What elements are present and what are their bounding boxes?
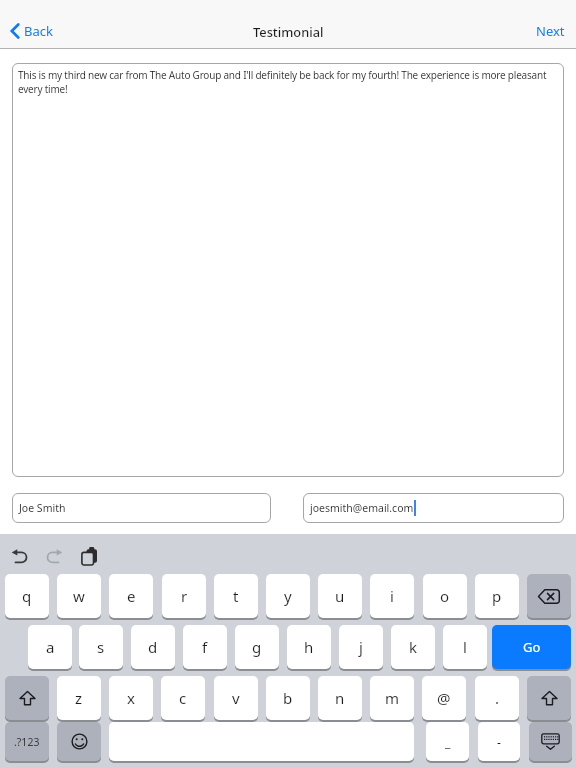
staticText: @ bbox=[437, 688, 451, 708]
staticText: y bbox=[284, 586, 292, 606]
staticText: p bbox=[492, 586, 502, 606]
button[interactable]: f bbox=[183, 625, 227, 669]
button[interactable]: . bbox=[475, 676, 519, 720]
staticText: f bbox=[202, 637, 208, 657]
button[interactable]: k bbox=[391, 625, 435, 669]
staticText: m bbox=[385, 688, 400, 708]
button[interactable]: u bbox=[318, 574, 362, 618]
button[interactable]: n bbox=[318, 676, 362, 720]
staticText: r bbox=[181, 586, 188, 606]
staticText: Next bbox=[536, 22, 565, 40]
button[interactable]: c bbox=[161, 676, 205, 720]
button[interactable]: t bbox=[214, 574, 258, 618]
staticText: k bbox=[409, 637, 418, 657]
button[interactable]: Joe Smith bbox=[12, 493, 271, 523]
button[interactable]: - bbox=[478, 722, 520, 761]
staticText: .?123 bbox=[14, 735, 40, 749]
button[interactable]: o bbox=[423, 574, 467, 618]
staticText: x bbox=[127, 688, 135, 708]
button[interactable]: x bbox=[109, 676, 153, 720]
staticText: l bbox=[463, 637, 467, 657]
button[interactable]: Back bbox=[10, 22, 53, 40]
button[interactable]: p bbox=[475, 574, 519, 618]
staticText: Go bbox=[523, 638, 541, 656]
staticText: s bbox=[97, 637, 105, 657]
button[interactable]: Go bbox=[492, 625, 571, 669]
button[interactable] bbox=[5, 676, 49, 720]
staticText: e bbox=[127, 586, 136, 606]
staticText: n bbox=[335, 688, 345, 708]
button[interactable] bbox=[527, 574, 571, 618]
staticText: o bbox=[440, 586, 450, 606]
button[interactable]: b bbox=[266, 676, 310, 720]
staticText: joesmith@email.com bbox=[310, 501, 414, 515]
button[interactable]: g bbox=[235, 625, 279, 669]
button[interactable] bbox=[11, 549, 28, 564]
button[interactable] bbox=[46, 549, 63, 564]
staticText: c bbox=[179, 688, 187, 708]
staticText: Testimonial bbox=[253, 23, 324, 40]
button[interactable]: joesmith@email.com bbox=[303, 493, 564, 523]
button[interactable]: a bbox=[28, 625, 72, 669]
staticText: _ bbox=[445, 734, 451, 750]
staticText: . bbox=[495, 688, 500, 708]
button[interactable]: .?123 bbox=[5, 722, 49, 761]
staticText: i bbox=[390, 586, 394, 606]
button[interactable] bbox=[527, 676, 571, 720]
staticText: d bbox=[148, 637, 158, 657]
staticText: b bbox=[283, 688, 293, 708]
button[interactable]: d bbox=[131, 625, 175, 669]
button[interactable] bbox=[81, 547, 98, 566]
button[interactable]: i bbox=[370, 574, 414, 618]
button[interactable]: @ bbox=[422, 676, 466, 720]
staticText: Back bbox=[24, 22, 53, 40]
staticText: z bbox=[75, 688, 83, 708]
staticText: a bbox=[46, 637, 55, 657]
staticText: h bbox=[304, 637, 314, 657]
button[interactable]: l bbox=[443, 625, 487, 669]
staticText: This is my third new car from The Auto G… bbox=[18, 68, 547, 96]
button[interactable]: z bbox=[57, 676, 101, 720]
staticText: v bbox=[232, 688, 240, 708]
staticText: q bbox=[22, 586, 32, 606]
staticText: w bbox=[73, 586, 85, 606]
staticText: g bbox=[252, 637, 262, 657]
button[interactable]: _ bbox=[426, 722, 469, 761]
button[interactable] bbox=[109, 722, 414, 761]
button[interactable]: h bbox=[287, 625, 331, 669]
button[interactable]: q bbox=[5, 574, 49, 618]
button[interactable]: s bbox=[79, 625, 123, 669]
button[interactable]: r bbox=[162, 574, 206, 618]
button[interactable]: w bbox=[57, 574, 101, 618]
staticText: Joe Smith bbox=[19, 501, 66, 515]
staticText: u bbox=[335, 586, 345, 606]
staticText: t bbox=[233, 586, 239, 606]
button[interactable]: m bbox=[370, 676, 414, 720]
button[interactable]: This is my third new car from The Auto G… bbox=[12, 63, 564, 477]
button[interactable]: j bbox=[339, 625, 383, 669]
staticText: j bbox=[359, 637, 363, 657]
button[interactable]: y bbox=[266, 574, 310, 618]
button[interactable]: Next bbox=[536, 22, 565, 40]
button[interactable] bbox=[57, 722, 101, 761]
staticText: - bbox=[497, 734, 501, 750]
button[interactable]: v bbox=[214, 676, 258, 720]
button[interactable]: e bbox=[109, 574, 153, 618]
button[interactable] bbox=[529, 722, 572, 761]
